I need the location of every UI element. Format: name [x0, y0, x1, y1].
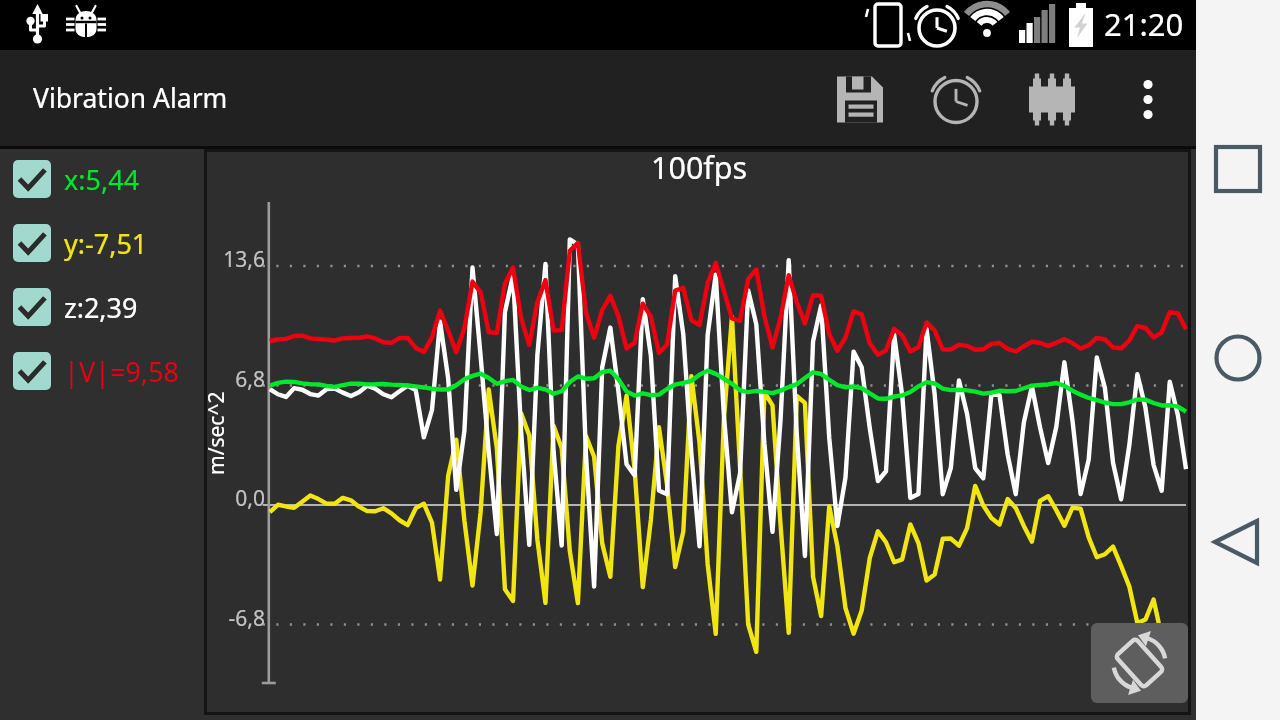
staticText: 13,6 — [207, 245, 265, 274]
button[interactable]: Recent apps — [1196, 127, 1280, 211]
button[interactable]: Rotate screen — [1091, 623, 1188, 703]
staticText: z:2,39 — [64, 289, 138, 326]
staticText: Vibration Alarm — [33, 80, 228, 116]
button[interactable]: Home — [1196, 316, 1280, 400]
staticText: x:5,44 — [64, 161, 140, 198]
staticText: 6,8 — [207, 365, 265, 394]
button[interactable]: Sensor — [1004, 50, 1100, 149]
button[interactable]: |V|=9,58 — [0, 339, 204, 403]
button[interactable]: z:2,39 — [0, 275, 204, 339]
button[interactable]: More options — [1100, 50, 1196, 149]
button[interactable]: x:5,44 — [0, 147, 204, 211]
button[interactable]: Save — [812, 50, 908, 149]
button[interactable]: y:-7,51 — [0, 211, 204, 275]
staticText: -6,8 — [207, 604, 265, 633]
button[interactable]: Alarm — [908, 50, 1004, 149]
staticText: y:-7,51 — [64, 225, 148, 262]
staticText: 100fps — [651, 146, 748, 188]
button[interactable]: Back — [1196, 500, 1280, 584]
staticText: m/sec^2 — [202, 391, 230, 475]
staticText: 0,0 — [207, 484, 265, 513]
staticText: |V|=9,58 — [64, 353, 179, 390]
staticText: 21:20 — [1104, 3, 1184, 45]
